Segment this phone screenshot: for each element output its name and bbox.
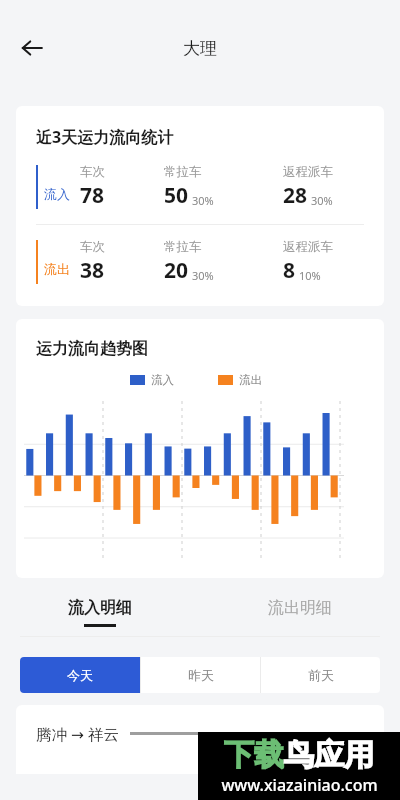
staticText: 车次 bbox=[80, 239, 105, 255]
button[interactable]: 前天 bbox=[261, 657, 380, 693]
staticText: 50 bbox=[164, 181, 189, 210]
button[interactable]: Back bbox=[10, 26, 54, 70]
staticText: 8 bbox=[283, 256, 296, 285]
staticText: 大理 bbox=[183, 38, 217, 59]
staticText: 鸟应用 bbox=[284, 736, 374, 774]
staticText: 常拉车 bbox=[164, 164, 202, 180]
button[interactable]: 今天 bbox=[20, 657, 140, 693]
staticText: 28 bbox=[283, 181, 308, 210]
staticText: 30% bbox=[192, 268, 214, 283]
staticText: 30% bbox=[192, 193, 214, 208]
staticText: 运力流向趋势图 bbox=[36, 339, 148, 359]
staticText: 下载 bbox=[224, 736, 284, 774]
staticText: 近3天运力流向统计 bbox=[36, 126, 174, 148]
button[interactable]: 昨天 bbox=[141, 657, 260, 693]
staticText: 常拉车 bbox=[164, 239, 202, 255]
staticText: 返程派车 bbox=[283, 164, 333, 180]
staticText: 前天 bbox=[308, 667, 334, 683]
staticText: 腾冲 → 祥云 bbox=[36, 723, 120, 744]
button[interactable]: 流入明细 bbox=[0, 588, 200, 636]
staticText: 今天 bbox=[67, 667, 93, 683]
staticText: 昨天 bbox=[188, 667, 214, 683]
staticText: 流出 bbox=[239, 373, 262, 387]
button[interactable]: 腾冲 → 祥云 bbox=[16, 705, 384, 774]
staticText: 流出 bbox=[44, 261, 70, 277]
staticText: 20 bbox=[164, 256, 189, 285]
staticText: 流出明细 bbox=[268, 598, 332, 618]
staticText: www.xiazainiao.com bbox=[221, 774, 378, 796]
staticText: 78 bbox=[80, 181, 105, 210]
staticText: 流入 bbox=[151, 373, 174, 387]
staticText: 38 bbox=[80, 256, 105, 285]
staticText: 30% bbox=[311, 193, 333, 208]
button[interactable]: 流出明细 bbox=[200, 588, 400, 636]
staticText: 10% bbox=[299, 268, 321, 283]
staticText: 车次 bbox=[80, 164, 105, 180]
staticText: 流入明细 bbox=[68, 598, 132, 618]
staticText: 返程派车 bbox=[283, 239, 333, 255]
staticText: 流入 bbox=[44, 186, 70, 202]
